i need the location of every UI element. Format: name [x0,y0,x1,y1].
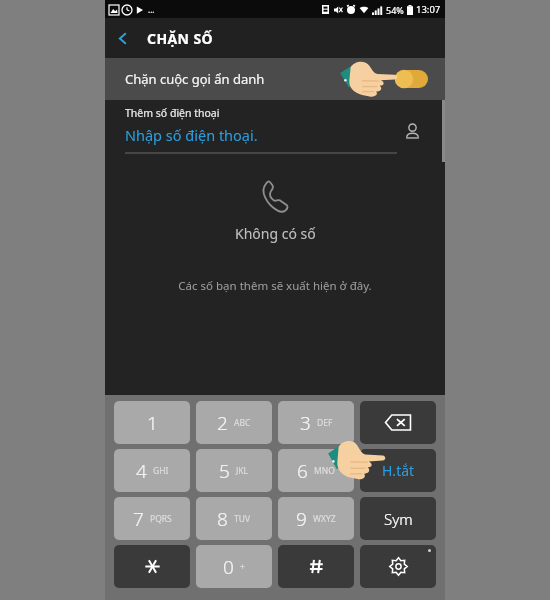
button[interactable]: 9 [278,497,354,540]
staticText: 5 [219,458,230,484]
button[interactable]: 1 [114,401,190,444]
staticText: + [240,561,245,573]
staticText: DEF [317,417,333,429]
staticText: CHẶN SỐ [147,29,213,48]
staticText: 13:07 [416,3,441,16]
button[interactable]: 0 [196,545,272,588]
staticText: 8 [217,506,228,532]
staticText: Sym [384,509,413,529]
button[interactable]: Done [360,449,436,492]
staticText: ... [148,4,155,15]
staticText: JKL [236,465,249,477]
staticText: 4 [136,458,147,484]
staticText: WXYZ [313,513,336,525]
staticText: 0 [223,554,234,580]
staticText: MNO [314,465,335,477]
button[interactable]: 5 [196,449,272,492]
button[interactable]: 4 [114,449,190,492]
staticText: 1 [147,410,158,436]
button[interactable]: 6 [278,449,354,492]
button[interactable]: Delete [360,401,436,444]
staticText: 9 [296,506,307,532]
staticText: 54% [386,4,404,16]
staticText: 2 [217,410,228,436]
staticText: 6 [297,458,308,484]
staticText: Chặn cuộc gọi ẩn danh [125,70,265,88]
staticText: TUV [234,513,251,525]
button[interactable]: Contacts [397,116,427,146]
staticText: 3 [300,410,311,436]
button[interactable]: 3 [278,401,354,444]
staticText: Các số bạn thêm sẽ xuất hiện ở đây. [178,278,372,294]
button[interactable]: Keyboard settings [360,545,436,588]
staticText: PQRS [150,513,172,525]
staticText: ABC [234,417,251,429]
staticText: 7 [133,506,144,532]
staticText: Không có số [235,224,316,243]
staticText: H.tắt [382,461,415,480]
button[interactable]: Chặn cuộc gọi ẩn danh [105,58,445,100]
staticText: GHI [153,465,169,477]
staticText: Thêm số điện thoại [125,106,220,120]
button[interactable]: 7 [114,497,190,540]
button[interactable]: 8 [196,497,272,540]
button[interactable]: Hash [278,545,354,588]
button[interactable]: Sym [360,497,436,540]
button[interactable]: Back [105,20,141,56]
button[interactable]: Star [114,545,190,588]
button[interactable]: 2 [196,401,272,444]
staticText: Nhập số điện thoại. [125,125,258,145]
